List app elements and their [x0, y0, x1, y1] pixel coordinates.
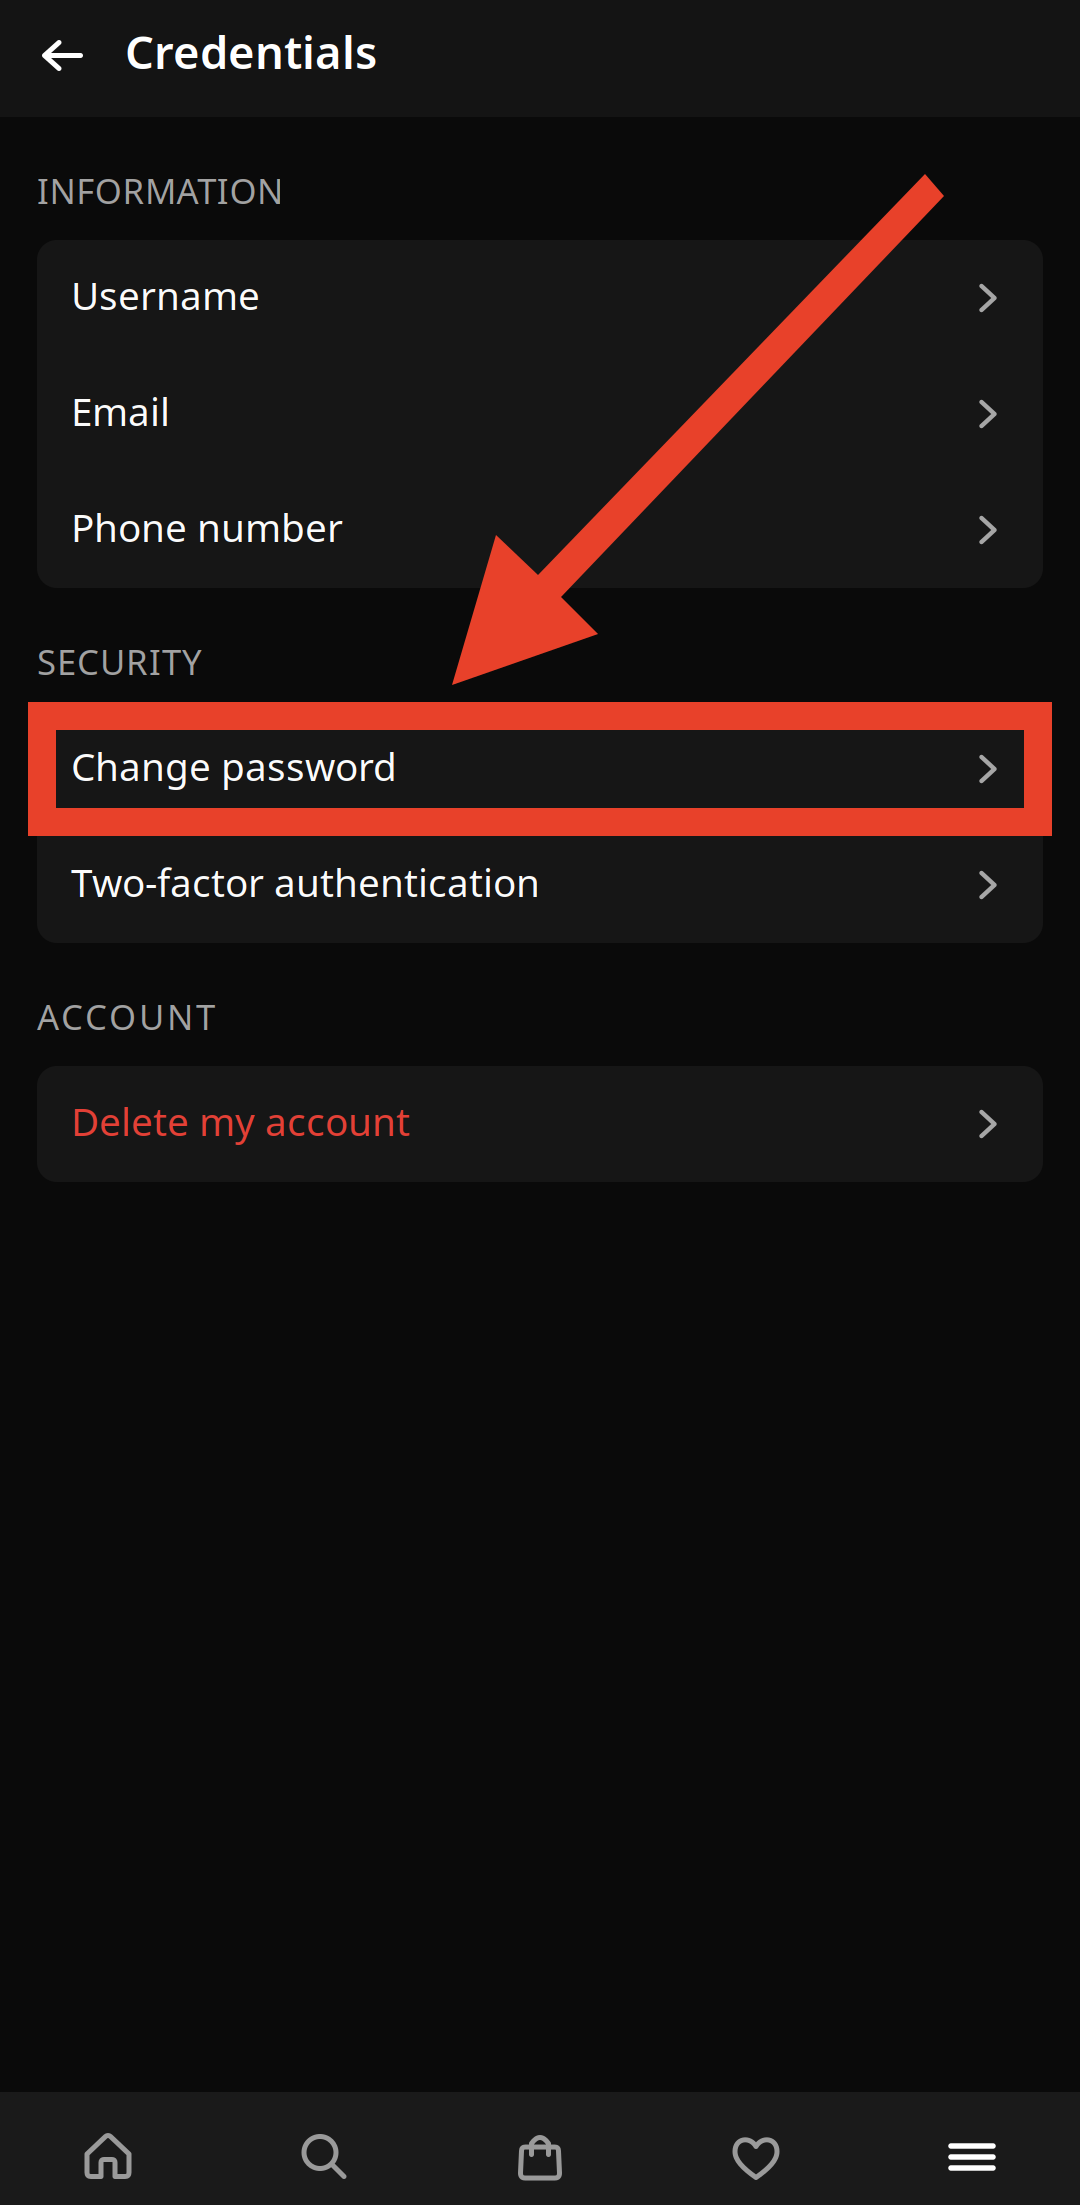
staticText: Change password — [71, 740, 397, 792]
button[interactable]: Username — [37, 240, 1043, 356]
button[interactable]: Favourites — [648, 2132, 864, 2180]
staticText: Credentials — [125, 21, 377, 82]
staticText: Two-factor authentication — [71, 856, 540, 908]
button[interactable]: Delete my account — [37, 1066, 1043, 1182]
staticText: Username — [71, 269, 260, 321]
button[interactable]: Menu — [864, 2132, 1080, 2180]
button[interactable]: Two-factor authentication — [37, 827, 1043, 943]
staticText: Delete my account — [71, 1095, 410, 1147]
button[interactable]: Phone number — [37, 472, 1043, 588]
staticText: SECURITY — [37, 638, 202, 684]
staticText: Email — [71, 385, 170, 437]
staticText: ACCOUNT — [37, 993, 215, 1039]
button[interactable]: Email — [37, 356, 1043, 472]
button[interactable]: Search — [216, 2132, 432, 2180]
button[interactable]: Back — [0, 0, 103, 117]
button[interactable]: Change password — [37, 711, 1043, 827]
button[interactable]: Home — [0, 2132, 216, 2180]
staticText: INFORMATION — [37, 167, 283, 213]
button[interactable]: Bag — [432, 2132, 648, 2180]
staticText: Phone number — [71, 501, 343, 553]
